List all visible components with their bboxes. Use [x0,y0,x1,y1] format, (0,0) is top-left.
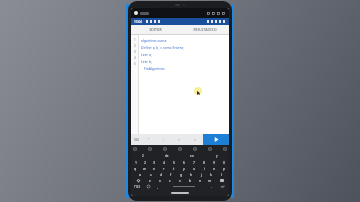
button[interactable]: 4 [159,159,169,165]
button[interactable]: Run [203,134,229,145]
button[interactable]: s [145,171,156,177]
button[interactable]: Enter [215,183,229,190]
button[interactable]: ?123 [131,183,143,190]
button[interactable]: Action 1 [212,12,215,15]
button[interactable]: f [166,171,176,177]
button[interactable]: Keyboard tool 2 [163,147,167,151]
staticText: e [153,166,155,171]
button[interactable]: y [179,165,189,171]
staticText: < [178,138,180,142]
staticText: x [159,178,161,183]
button[interactable]: a [134,171,145,177]
staticText: y [216,154,218,158]
staticText: algoritmo suma [141,38,167,43]
staticText: l [221,172,222,177]
staticText: w [143,166,146,171]
button[interactable]: Keyboard tool 5 [208,147,212,151]
staticText: b [189,178,192,183]
staticText: r [163,166,165,171]
staticText: i [204,166,205,171]
button[interactable]: en [179,152,204,159]
button[interactable]: b [185,177,195,183]
button[interactable]: 3 [149,159,159,165]
staticText: 2 [144,160,146,165]
staticText: h [190,172,193,177]
button[interactable]: Keyboard tool 4 [193,147,197,151]
button[interactable]: l [216,171,226,177]
button[interactable]: Action 0 [207,12,210,15]
button[interactable]: RESULTADO(S) [180,25,229,34]
button[interactable]: 2 [140,159,149,165]
staticText: en [190,154,194,158]
button[interactable]: de [155,152,179,159]
staticText: de [165,154,169,158]
button[interactable]: g [176,171,186,177]
button[interactable]: EDITOR [131,25,180,34]
staticText: 1 [134,38,136,42]
staticText: d [160,172,163,177]
button[interactable]: q [131,165,140,171]
staticText: c [169,178,171,183]
staticText: 10:04 [134,20,143,24]
button[interactable]: v [175,177,185,183]
button[interactable]: Keyboard tool 3 [178,147,182,151]
button[interactable]: Shift [131,177,145,183]
button[interactable]: o [209,165,219,171]
button[interactable]: < [171,134,187,145]
button[interactable]: e [149,165,159,171]
staticText: k [210,172,212,177]
button[interactable]: = [187,134,203,145]
staticText: Definir a, b, c como Entero; [141,45,184,50]
staticText: TAB [134,138,139,142]
button[interactable]: 0 [219,159,229,165]
button[interactable]: Keyboard tool 1 [148,147,152,151]
button[interactable]: k [206,171,216,177]
button[interactable]: w [140,165,149,171]
button[interactable]: 7 [189,159,199,165]
other: App icon [134,11,138,15]
staticText: 0 [223,160,225,165]
button[interactable]: , [153,183,161,190]
button[interactable]: h [186,171,196,177]
button[interactable]: j [196,171,206,177]
staticText: o [213,166,216,171]
button[interactable]: c [165,177,175,183]
staticText: g [180,172,183,177]
button[interactable]: " [141,134,156,145]
button[interactable]: 6 [179,159,189,165]
button[interactable]: 5 [169,159,179,165]
button[interactable]: 8 [199,159,209,165]
button[interactable]: t [169,165,179,171]
button[interactable]: Action 3 [222,12,225,15]
button[interactable]: 1 [131,159,140,165]
staticText: Leer a; [141,52,152,57]
staticText: 6 [183,160,185,165]
staticText: t [173,166,175,171]
button[interactable]: m [205,177,215,183]
button[interactable]: Keyboard tool 6 [223,147,227,151]
button[interactable]: 9 [209,159,219,165]
button[interactable]: Space [162,183,206,190]
staticText: FinAlgoritmo [144,66,165,71]
button[interactable]: 2 [131,152,155,159]
button[interactable]: z [145,177,155,183]
button[interactable]: d [156,171,166,177]
button[interactable]: i [199,165,209,171]
staticText: y [183,166,185,171]
button[interactable]: Backspace [215,177,229,183]
button[interactable]: n [195,177,205,183]
button[interactable]: TAB [131,134,141,145]
staticText: 7 [193,160,195,165]
button[interactable]: u [189,165,199,171]
button[interactable]: p [219,165,229,171]
button[interactable]: Keyboard tool 0 [133,147,137,151]
button[interactable]: Emoji [143,183,153,190]
button[interactable]: r [159,165,169,171]
staticText: EDITOR [149,27,162,32]
button[interactable]: Action 2 [217,12,220,15]
button[interactable]: . [207,183,215,190]
button[interactable]: y [204,152,229,159]
button[interactable]: x [155,177,165,183]
staticText: RESULTADO(S) [193,27,217,32]
